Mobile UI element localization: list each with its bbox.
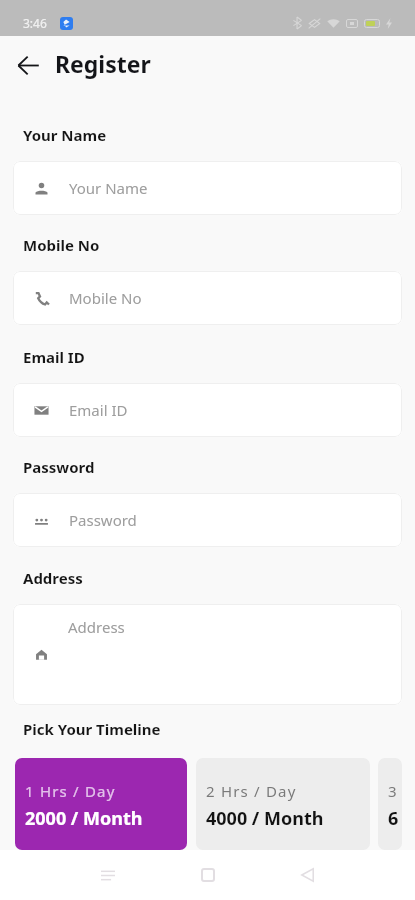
button[interactable]: Email ID	[13, 383, 402, 437]
staticText: 3 Hrs / Day	[388, 781, 402, 801]
button[interactable]: Back	[283, 851, 331, 899]
staticText: Register	[55, 48, 151, 79]
staticText: Password	[23, 457, 95, 477]
button[interactable]: Your Name	[13, 161, 402, 215]
staticText: 3:46	[23, 15, 47, 31]
staticText: 2000 / Month	[25, 806, 143, 831]
staticText: 1 Hrs / Day	[25, 781, 116, 801]
button[interactable]: Home	[184, 851, 232, 899]
staticText: 2 Hrs / Day	[206, 781, 297, 801]
staticText: Email ID	[69, 400, 128, 420]
staticText: Email ID	[23, 347, 85, 367]
button[interactable]: Mobile No	[13, 271, 402, 325]
staticText: Your Name	[69, 178, 148, 198]
staticText: Mobile No	[69, 288, 142, 308]
button[interactable]: Password	[13, 493, 402, 547]
staticText: Address	[23, 568, 83, 588]
staticText: Mobile No	[23, 235, 100, 255]
staticText: Pick Your Timeline	[23, 719, 161, 739]
button[interactable]: 1 Hrs / Day	[15, 758, 187, 850]
button[interactable]: 2 Hrs / Day	[196, 758, 370, 850]
button[interactable]: Address	[13, 604, 402, 705]
staticText: Address	[68, 617, 125, 637]
button[interactable]: 3 Hrs / Day	[378, 758, 402, 850]
button[interactable]: Back	[8, 45, 48, 85]
button[interactable]: Recents	[84, 851, 132, 899]
staticText: 4000 / Month	[206, 806, 324, 831]
staticText: 6000 / Month	[388, 806, 402, 831]
staticText: Your Name	[23, 125, 107, 145]
staticText: Password	[69, 510, 137, 530]
